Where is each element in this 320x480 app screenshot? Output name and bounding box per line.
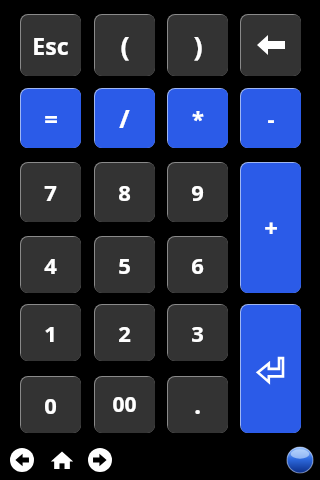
staticText: / (119, 101, 130, 135)
staticText: 4 (44, 250, 57, 280)
button[interactable]: ) (167, 14, 228, 76)
staticText: ( (120, 27, 130, 64)
button[interactable]: = (20, 88, 81, 148)
button[interactable]: 3 (167, 304, 228, 361)
button[interactable]: Enter (240, 304, 301, 433)
staticText: 1 (44, 318, 57, 348)
button[interactable]: 1 (20, 304, 81, 361)
staticText: + (264, 211, 278, 244)
staticText: . (194, 388, 201, 421)
staticText: 6 (191, 250, 204, 280)
button[interactable]: 6 (167, 236, 228, 293)
button[interactable]: 4 (20, 236, 81, 293)
button[interactable]: . (167, 376, 228, 433)
button[interactable]: - (240, 88, 301, 148)
button[interactable]: Home (48, 446, 76, 474)
button[interactable]: 5 (94, 236, 155, 293)
staticText: 0 (44, 390, 57, 420)
staticText: 3 (191, 318, 204, 348)
button[interactable]: + (240, 162, 301, 293)
staticText: 8 (118, 177, 131, 207)
staticText: 00 (112, 390, 137, 419)
staticText: 2 (118, 318, 131, 348)
button[interactable]: Back (8, 446, 36, 474)
staticText: 7 (44, 177, 57, 207)
staticText: 9 (191, 177, 204, 207)
button[interactable]: 0 (20, 376, 81, 433)
staticText: = (44, 102, 58, 135)
staticText: ) (193, 27, 203, 64)
button[interactable]: 9 (167, 162, 228, 222)
button[interactable]: 00 (94, 376, 155, 433)
button[interactable]: 8 (94, 162, 155, 222)
button[interactable]: Menu (286, 446, 314, 474)
button[interactable]: Forward (86, 446, 114, 474)
button[interactable]: ( (94, 14, 155, 76)
staticText: - (267, 103, 275, 133)
button[interactable]: 2 (94, 304, 155, 361)
button[interactable]: / (94, 88, 155, 148)
button[interactable]: * (167, 88, 228, 148)
button[interactable]: Backspace (240, 14, 301, 76)
button[interactable]: 7 (20, 162, 81, 222)
button[interactable]: Esc (20, 14, 81, 76)
staticText: * (192, 103, 204, 133)
staticText: 5 (118, 250, 131, 280)
staticText: Esc (32, 30, 69, 61)
